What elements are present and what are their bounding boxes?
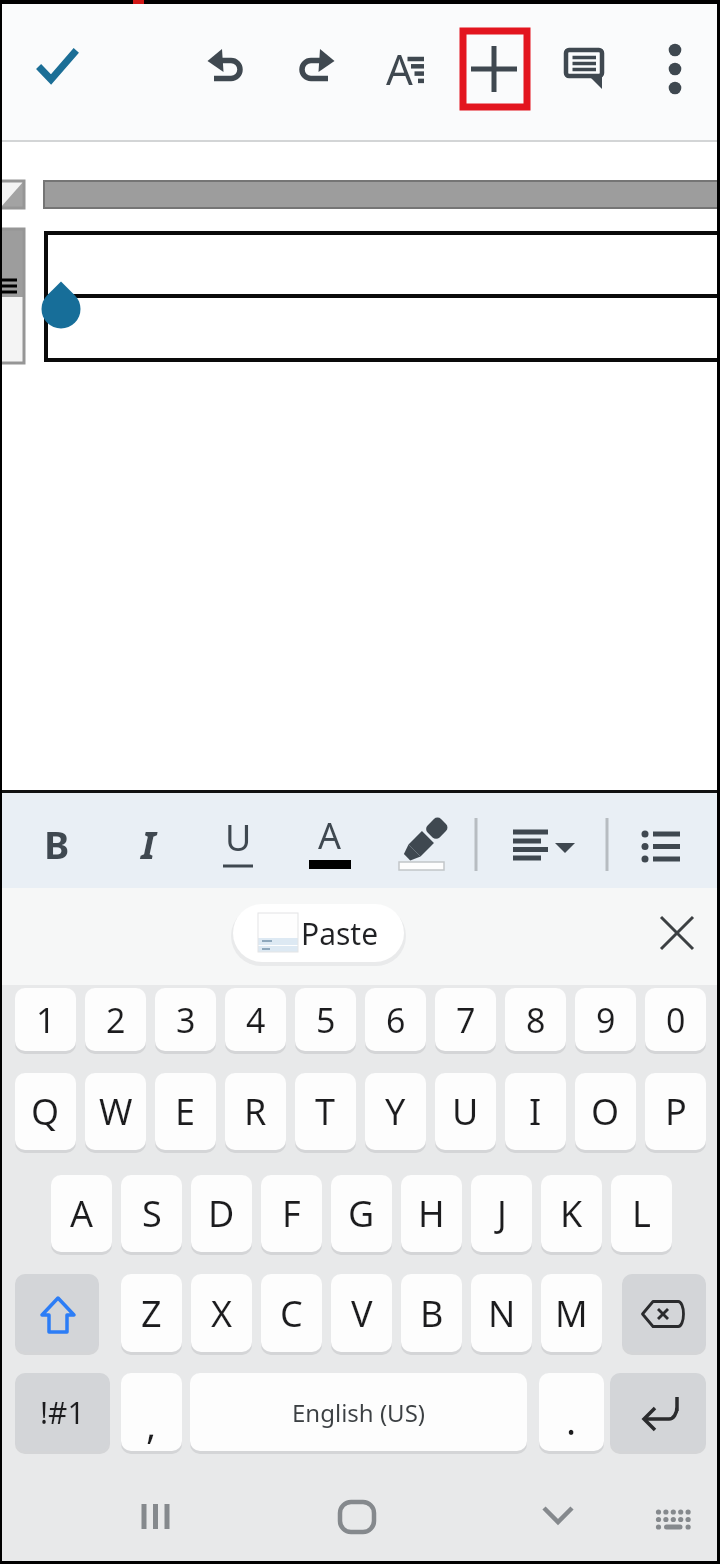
button[interactable]: E xyxy=(155,1073,216,1150)
button[interactable]: A xyxy=(51,1175,112,1252)
button[interactable]: 1 xyxy=(15,988,76,1051)
button[interactable] xyxy=(632,810,692,870)
staticText: 5 xyxy=(316,997,336,1043)
staticText: G xyxy=(348,1189,375,1238)
button[interactable]: O xyxy=(575,1073,636,1150)
button[interactable]: S xyxy=(121,1175,182,1252)
button[interactable] xyxy=(515,810,595,870)
button[interactable] xyxy=(622,1274,706,1352)
button[interactable] xyxy=(27,810,87,870)
button[interactable] xyxy=(300,810,360,870)
button[interactable] xyxy=(190,1373,527,1451)
button[interactable]: 7 xyxy=(435,988,496,1051)
button[interactable] xyxy=(522,1480,594,1552)
button[interactable]: 4 xyxy=(225,988,286,1051)
staticText: Paste xyxy=(301,913,379,954)
staticText: Q xyxy=(31,1087,60,1136)
button[interactable] xyxy=(649,905,705,961)
button[interactable]: 9 xyxy=(575,988,636,1051)
button[interactable] xyxy=(322,1480,394,1552)
button[interactable] xyxy=(375,39,435,99)
staticText: F xyxy=(282,1189,301,1238)
button[interactable]: 6 xyxy=(365,988,426,1051)
staticText: 7 xyxy=(456,997,476,1043)
staticText: B xyxy=(420,1289,444,1338)
staticText: R xyxy=(244,1087,267,1136)
button[interactable]: 8 xyxy=(505,988,566,1051)
button[interactable]: H xyxy=(401,1175,462,1252)
button[interactable] xyxy=(196,39,256,99)
button[interactable]: !#1 xyxy=(15,1373,110,1451)
staticText: U xyxy=(452,1087,479,1136)
button[interactable]: 2 xyxy=(85,988,146,1051)
button[interactable]: 5 xyxy=(295,988,356,1051)
staticText: . xyxy=(566,1394,577,1446)
button[interactable]: , xyxy=(121,1373,182,1451)
staticText: X xyxy=(211,1289,233,1338)
button[interactable]: F xyxy=(261,1175,322,1252)
staticText: Z xyxy=(141,1289,162,1338)
staticText: V xyxy=(351,1289,373,1338)
button[interactable]: K xyxy=(541,1175,602,1252)
button[interactable] xyxy=(553,39,613,99)
staticText: B xyxy=(44,818,70,870)
button[interactable] xyxy=(638,1480,710,1552)
staticText: O xyxy=(591,1087,620,1136)
button[interactable]: W xyxy=(85,1073,146,1150)
button[interactable] xyxy=(27,39,87,99)
staticText: A xyxy=(70,1189,94,1238)
staticText: A xyxy=(386,40,413,96)
button[interactable]: B xyxy=(401,1274,462,1352)
button[interactable]: R xyxy=(225,1073,286,1150)
button[interactable] xyxy=(287,39,347,99)
button[interactable] xyxy=(645,39,705,99)
button[interactable]: C xyxy=(261,1274,322,1352)
staticText: D xyxy=(208,1189,235,1238)
staticText: W xyxy=(99,1087,133,1136)
button[interactable]: V xyxy=(331,1274,392,1352)
button[interactable]: Q xyxy=(15,1073,76,1150)
staticText: T xyxy=(315,1087,336,1136)
button[interactable]: T xyxy=(295,1073,356,1150)
button[interactable]: 3 xyxy=(155,988,216,1051)
staticText: N xyxy=(488,1289,516,1338)
staticText: , xyxy=(146,1398,157,1450)
button[interactable]: L xyxy=(611,1175,672,1252)
button[interactable]: N xyxy=(471,1274,532,1352)
button[interactable]: Z xyxy=(121,1274,182,1352)
button[interactable]: Y xyxy=(365,1073,426,1150)
staticText: Y xyxy=(385,1087,406,1136)
staticText: K xyxy=(560,1189,583,1238)
staticText: English (US) xyxy=(292,1396,426,1429)
button[interactable] xyxy=(208,810,268,870)
staticText: J xyxy=(497,1189,507,1238)
button[interactable]: . xyxy=(539,1373,604,1451)
staticText: 4 xyxy=(246,997,266,1043)
button[interactable] xyxy=(15,1274,99,1352)
staticText: L xyxy=(632,1189,651,1238)
button[interactable]: I xyxy=(505,1073,566,1150)
button[interactable] xyxy=(233,904,404,962)
button[interactable]: J xyxy=(471,1175,532,1252)
staticText: 1 xyxy=(36,997,56,1043)
staticText: 8 xyxy=(526,997,546,1043)
staticText: M xyxy=(555,1289,588,1338)
staticText: I xyxy=(141,818,156,870)
button[interactable] xyxy=(120,1480,192,1552)
staticText: H xyxy=(418,1189,445,1238)
button[interactable]: G xyxy=(331,1175,392,1252)
button[interactable]: D xyxy=(191,1175,252,1252)
staticText: !#1 xyxy=(40,1392,85,1433)
staticText: 2 xyxy=(106,997,126,1043)
button[interactable]: M xyxy=(541,1274,602,1352)
button[interactable] xyxy=(610,1373,706,1451)
button[interactable]: U xyxy=(435,1073,496,1150)
staticText: P xyxy=(665,1087,687,1136)
button[interactable] xyxy=(391,810,451,870)
button[interactable]: 0 xyxy=(645,988,706,1051)
button[interactable]: X xyxy=(191,1274,252,1352)
button[interactable]: P xyxy=(645,1073,706,1150)
button[interactable] xyxy=(118,810,178,870)
button[interactable] xyxy=(464,39,524,99)
staticText: S xyxy=(142,1189,162,1238)
